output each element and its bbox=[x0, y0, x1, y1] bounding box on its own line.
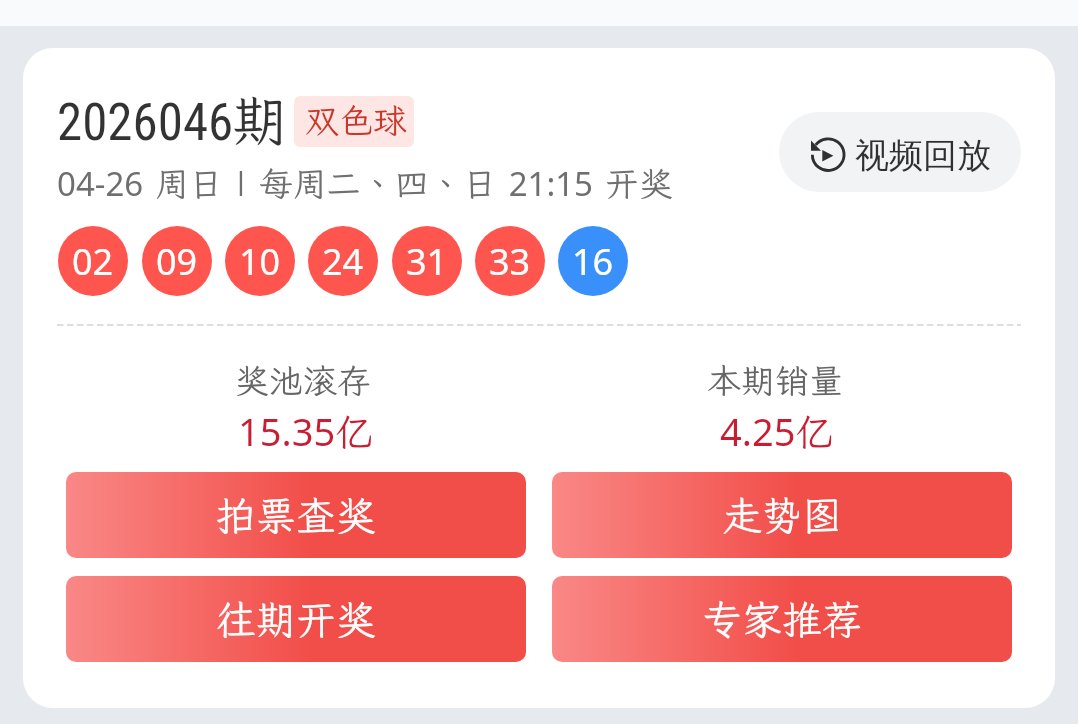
button[interactable]: 往期开奖 bbox=[66, 576, 526, 662]
staticText: 10 bbox=[239, 237, 281, 286]
staticText: 33 bbox=[489, 237, 531, 286]
staticText: 拍票查奖 bbox=[216, 489, 376, 542]
staticText: 16 bbox=[572, 237, 614, 286]
staticText: 09 bbox=[156, 237, 198, 286]
staticText: 4.25亿 bbox=[720, 405, 834, 453]
staticText: 02 bbox=[72, 237, 114, 286]
staticText: 双色球 bbox=[305, 98, 407, 143]
staticText: 奖池滚存 bbox=[235, 358, 371, 402]
staticText: 走势图 bbox=[722, 489, 842, 542]
button[interactable]: 走势图 bbox=[552, 472, 1012, 558]
staticText: 2026046 bbox=[57, 93, 234, 153]
button[interactable]: 拍票查奖 bbox=[66, 472, 526, 558]
staticText: 15.35亿 bbox=[238, 405, 374, 453]
other: 视频回放 bbox=[779, 112, 1021, 192]
staticText: 本期销量 bbox=[707, 358, 843, 402]
button[interactable]: 专家推荐 bbox=[552, 576, 1012, 662]
staticText: 24 bbox=[322, 237, 364, 286]
staticText: 04-26 周日 | 每周二、四、日 21:15 开奖 bbox=[57, 161, 673, 206]
button[interactable]: 视频回放 bbox=[779, 112, 1021, 192]
staticText: 往期开奖 bbox=[216, 593, 376, 646]
staticText: 31 bbox=[406, 237, 448, 286]
staticText: 期 bbox=[232, 83, 288, 157]
staticText: 专家推荐 bbox=[702, 593, 862, 646]
staticText: 视频回放 bbox=[855, 134, 991, 177]
